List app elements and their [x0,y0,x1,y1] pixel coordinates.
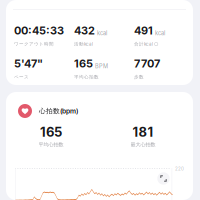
button[interactable]: フルスクリーン表示 [157,172,170,185]
staticText: 165 [40,124,62,140]
staticText: 00:45:33 [14,24,64,37]
staticText: 220 [175,166,184,171]
button[interactable]: 心拍数(bpm) [18,104,78,118]
staticText: 165 [74,57,93,70]
staticText: ワークアウト時間 [14,41,54,47]
staticText: BPM [95,63,108,70]
staticText: 歩数 [134,74,144,80]
staticText: 7707 [134,57,160,70]
staticText: 181 [132,124,153,140]
staticText: 平均心拍数 [74,74,99,80]
staticText: 5'47" [14,57,43,70]
button[interactable]: 5'47" [14,57,74,78]
button[interactable]: 432 [74,24,134,45]
staticText: 432 [74,24,95,37]
staticText: 活動kcal [74,41,93,47]
button[interactable]: 00:45:33 [14,24,74,45]
staticText: ペース [14,74,29,80]
staticText: kcal [97,30,107,37]
staticText: 最大心拍数 [130,141,155,148]
button[interactable]: 491 [134,24,194,45]
button[interactable]: 181 [113,127,173,145]
staticText: 491 [134,24,153,37]
staticText: 合計kcal [134,41,153,47]
button[interactable]: 7707 [134,57,194,78]
button[interactable]: 165 [21,127,81,145]
staticText: 心拍数(bpm) [39,107,78,115]
button[interactable]: 165 [74,57,134,78]
staticText: kcal [155,30,165,37]
staticText: 平均心拍数 [38,141,63,148]
